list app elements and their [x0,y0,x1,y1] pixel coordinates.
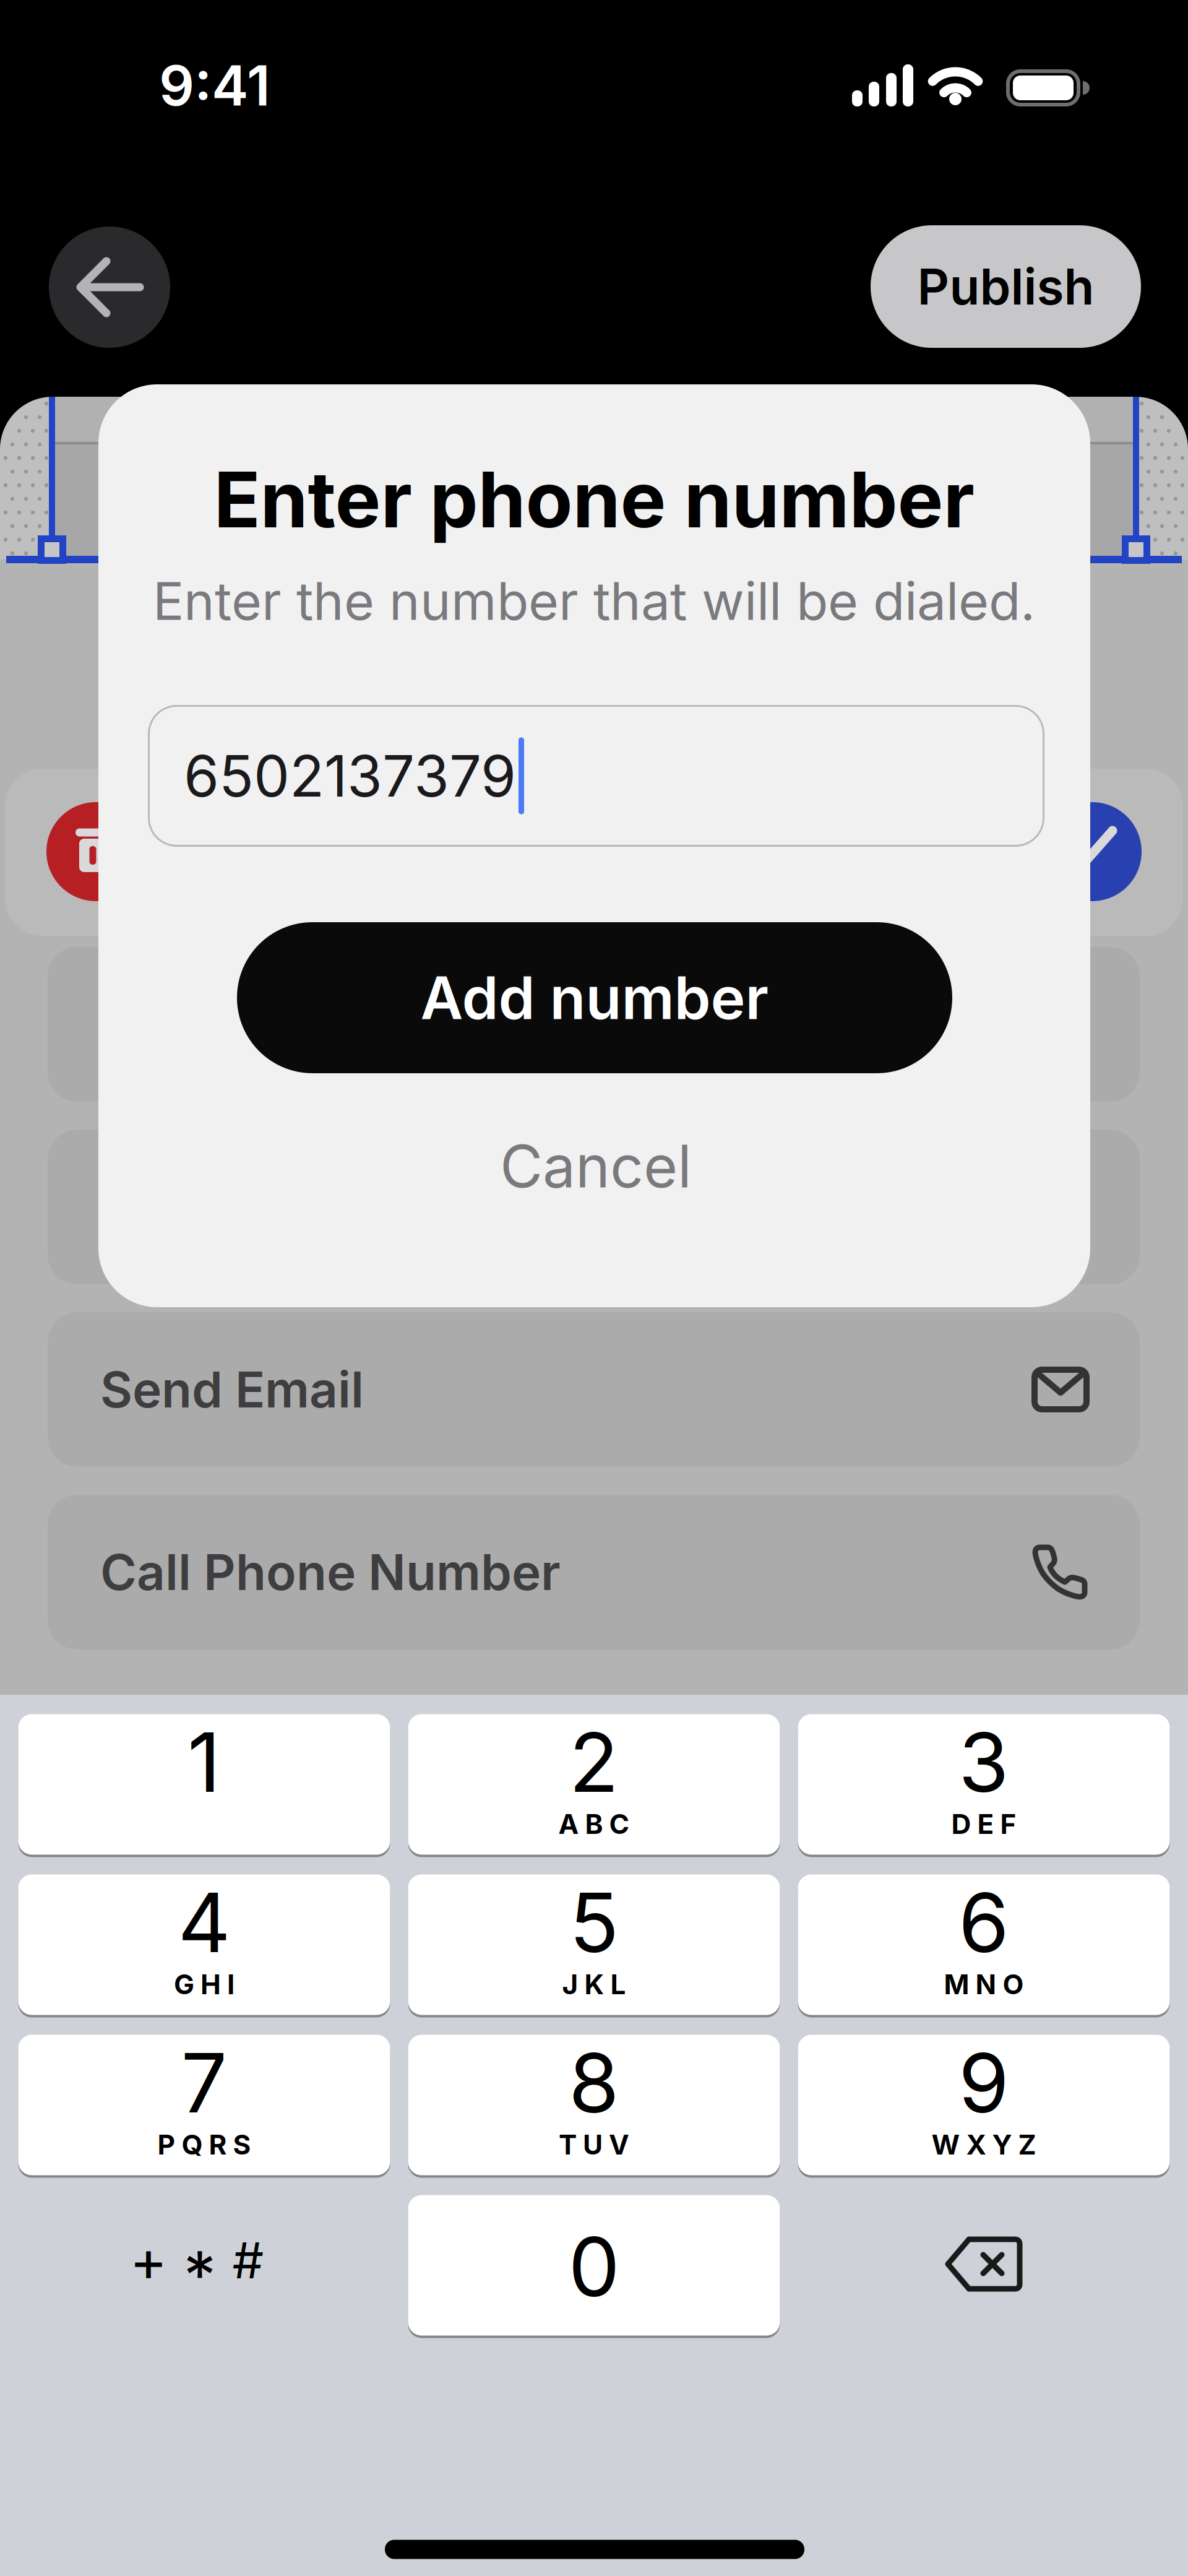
button[interactable]: Back [49,227,170,348]
staticText: W X Y Z [932,2129,1036,2161]
staticText: P Q R S [157,2129,251,2161]
staticText: 3 [958,1714,1009,1810]
staticText: Enter the number that will be dialed. [153,570,1035,632]
button[interactable]: Call Phone Number [48,1495,1140,1649]
button[interactable]: 6 [798,1874,1170,2016]
staticText: 1 [187,1714,221,1810]
staticText: 6502137379 [184,742,516,809]
staticText: M N O [944,1968,1024,2000]
staticText: 4 [178,1874,230,1971]
staticText: 8 [569,2034,619,2131]
button[interactable]: More symbols [73,2198,321,2322]
staticText: Call Phone Number [100,1543,561,1601]
staticText: 0 [568,2218,620,2315]
button[interactable]: 3 [798,1713,1170,1856]
button[interactable]: Add number [237,922,952,1073]
button[interactable]: Cancel [475,1119,717,1213]
staticText: G H I [174,1968,235,2000]
button[interactable]: 2 [408,1713,780,1856]
staticText: * [183,2237,216,2314]
staticText: Send Email [100,1360,364,1419]
staticText: 7 [181,2034,227,2131]
button[interactable]: 7 [18,2034,390,2176]
button[interactable]: 0 [408,2194,780,2336]
staticText: 9 [958,2034,1009,2131]
staticText: Cancel [500,1132,692,1201]
button[interactable]: 5 [408,1874,780,2016]
button[interactable]: Delete [934,2227,1033,2301]
staticText: + [130,2227,167,2294]
staticText: D E F [951,1808,1016,1840]
button[interactable]: Publish [871,225,1141,348]
staticText: 2 [569,1714,619,1810]
staticText: Publish [917,257,1094,316]
staticText: Add number [420,963,769,1032]
staticText: J K L [562,1968,626,2000]
staticText: 6 [958,1874,1009,1971]
staticText: 5 [569,1874,619,1971]
button[interactable]: 1 [18,1713,390,1856]
staticText: Enter phone number [214,454,974,545]
staticText: 9:41 [159,53,270,118]
staticText: T U V [559,2129,629,2161]
button[interactable]: 9 [798,2034,1170,2176]
button[interactable]: 4 [18,1874,390,2016]
staticText: A B C [558,1808,630,1840]
button[interactable]: Send Email [48,1312,1140,1467]
staticText: # [232,2231,264,2290]
button[interactable]: 8 [408,2034,780,2176]
